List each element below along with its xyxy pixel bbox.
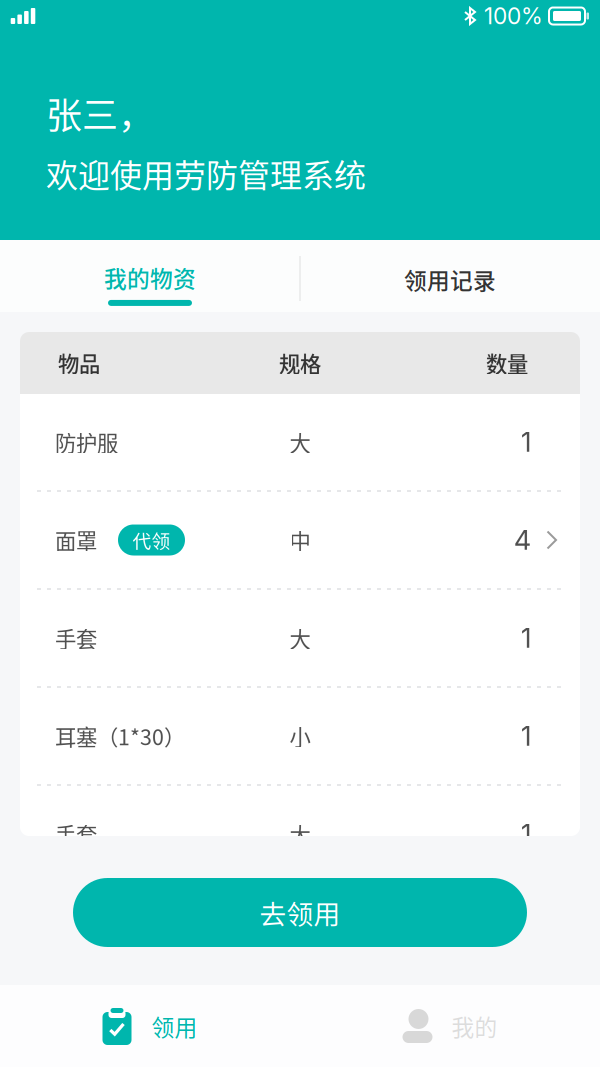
staticText: 防护服 [55, 427, 118, 457]
staticText: 领用 [151, 1010, 197, 1042]
staticText: 1 [521, 818, 531, 850]
button[interactable]: 手套 [20, 590, 580, 686]
staticText: 张三， [46, 87, 154, 139]
staticText: 代领 [132, 526, 170, 553]
staticText: 中 [289, 525, 310, 555]
button[interactable]: 领用记录 [300, 240, 600, 312]
staticText: 欢迎使用劳防管理系统 [46, 150, 366, 196]
staticText: 4 [514, 524, 531, 556]
staticText: 1 [521, 720, 531, 752]
staticText: 去领用 [259, 893, 340, 932]
staticText: 100% [484, 2, 543, 30]
staticText: 手套 [55, 819, 97, 849]
staticText: 1 [521, 426, 531, 458]
staticText: 我的物资 [104, 261, 196, 294]
button[interactable]: 领用 [0, 985, 300, 1067]
button[interactable]: 面罩 [20, 492, 580, 588]
button[interactable]: 防护服 [20, 394, 580, 490]
staticText: 数量 [486, 348, 528, 378]
staticText: 规格 [279, 348, 321, 378]
staticText: 1 [521, 622, 531, 654]
staticText: 大 [289, 623, 310, 653]
staticText: 小 [289, 721, 310, 751]
staticText: 大 [289, 427, 310, 457]
button[interactable]: 去领用 [73, 878, 527, 947]
staticText: 手套 [55, 623, 97, 653]
button[interactable]: 手套 [20, 786, 580, 882]
staticText: 面罩 [55, 525, 97, 555]
staticText: 物品 [58, 348, 100, 378]
staticText: 大 [289, 819, 310, 849]
button[interactable]: 耳塞（1*30） [20, 688, 580, 784]
staticText: 领用记录 [404, 263, 496, 296]
button[interactable]: 我的物资 [0, 240, 300, 312]
staticText: 耳塞（1*30） [55, 721, 185, 751]
button[interactable]: 我的 [300, 985, 600, 1067]
staticText: 我的 [451, 1010, 497, 1042]
